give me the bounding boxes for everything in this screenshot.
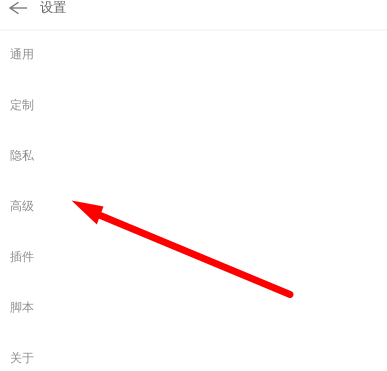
button[interactable]: 定制 [0,80,387,130]
button[interactable]: 插件 [0,231,387,282]
staticText: 隐私 [10,148,34,163]
staticText: 脚本 [10,300,34,315]
staticText: 设置 [40,0,66,15]
button[interactable]: Back [0,0,40,19]
button[interactable]: 高级 [0,181,387,231]
staticText: 高级 [10,199,34,213]
button[interactable]: 设置 [36,0,70,19]
staticText: 通用 [10,47,34,62]
staticText: 插件 [10,249,34,264]
button[interactable]: 关于 [0,333,387,371]
staticText: 定制 [10,97,34,112]
button[interactable]: 隐私 [0,130,387,181]
button[interactable]: 脚本 [0,282,387,333]
button[interactable]: 通用 [0,29,387,80]
staticText: 关于 [10,350,34,365]
